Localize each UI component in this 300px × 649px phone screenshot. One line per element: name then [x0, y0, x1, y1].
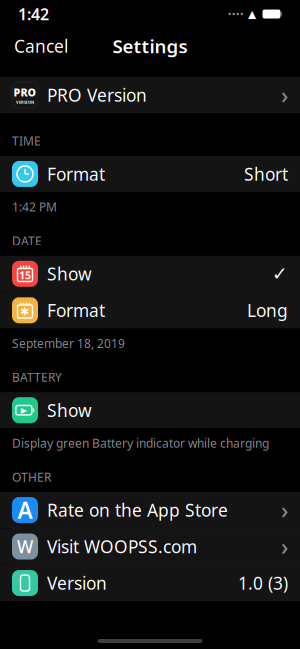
staticText: ▶: [21, 406, 27, 415]
staticText: Visit WOOPSS.com: [47, 535, 197, 558]
staticText: 1:42 PM: [12, 199, 57, 215]
staticText: 1:42: [18, 3, 49, 25]
staticText: 1.0 (3): [238, 571, 288, 594]
staticText: DATE: [12, 233, 42, 249]
button[interactable]: W: [0, 528, 300, 564]
staticText: VERSION: [16, 99, 34, 105]
staticText: ›: [281, 495, 288, 525]
button[interactable]: ✱: [0, 292, 300, 328]
staticText: Settings: [112, 34, 187, 58]
staticText: ›: [281, 531, 288, 562]
staticText: ›: [281, 80, 288, 110]
staticText: 15: [19, 268, 31, 282]
staticText: Short: [244, 162, 288, 185]
staticText: Format: [47, 162, 105, 185]
staticText: Version: [47, 571, 107, 594]
button[interactable]: PRO: [0, 77, 300, 113]
staticText: PRO Version: [47, 83, 147, 106]
staticText: TIME: [12, 133, 41, 149]
staticText: W: [17, 535, 33, 558]
staticText: Show: [47, 262, 92, 285]
staticText: Show: [47, 399, 92, 422]
staticText: A: [17, 495, 32, 525]
staticText: Display green Battery indicator while ch…: [12, 435, 269, 451]
staticText: OTHER: [12, 469, 51, 485]
staticText: BATTERY: [12, 369, 62, 385]
staticText: September 18, 2019: [12, 335, 125, 351]
staticText: Long: [247, 299, 288, 322]
staticText: ✓: [272, 263, 288, 284]
staticText: ▲: [248, 8, 256, 20]
button[interactable]: A: [0, 492, 300, 528]
button[interactable]: Format: [0, 156, 300, 192]
staticText: PRO: [13, 85, 36, 99]
staticText: ✱: [20, 305, 29, 318]
button[interactable]: Version: [0, 565, 300, 601]
button[interactable]: Cancel: [0, 26, 82, 65]
staticText: Rate on the App Store: [47, 498, 228, 521]
staticText: Cancel: [14, 34, 68, 57]
button[interactable]: ▶: [0, 392, 300, 428]
button[interactable]: 15: [0, 256, 300, 292]
staticText: Format: [47, 299, 105, 322]
